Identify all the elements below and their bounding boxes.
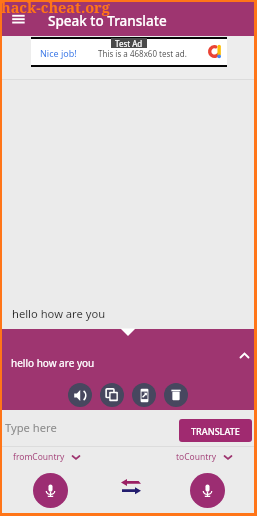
button[interactable]: Listen: [68, 383, 92, 407]
staticText: Nice job!: [40, 47, 77, 59]
button[interactable]: fromCountry: [13, 451, 81, 463]
staticText: hello how are you: [12, 306, 106, 321]
button[interactable]: toCountry: [176, 451, 233, 463]
staticText: Test Ad: [115, 38, 143, 48]
button[interactable]: Advertisement: [31, 37, 227, 67]
button[interactable]: Collapse translation: [236, 347, 253, 364]
button[interactable]: Share: [132, 383, 156, 407]
staticText: hack-cheat.org: [1, 0, 110, 17]
button[interactable]: Open navigation menu: [11, 12, 27, 26]
staticText: TRANSLATE: [191, 425, 240, 437]
staticText: fromCountry: [13, 451, 65, 463]
button[interactable]: Swap languages: [121, 479, 141, 495]
button[interactable]: Copy text: [100, 383, 124, 407]
staticText: toCountry: [176, 451, 217, 463]
button[interactable]: Delete: [164, 383, 188, 407]
staticText: Speak to Translate: [48, 12, 167, 30]
button[interactable]: Speak: [190, 473, 225, 508]
staticText: This is a 468x60 test ad.: [98, 48, 187, 59]
staticText: Type here: [5, 420, 57, 435]
staticText: hello how are you: [11, 356, 95, 370]
button[interactable]: Speak: [33, 473, 68, 508]
button[interactable]: TRANSLATE: [179, 419, 252, 442]
